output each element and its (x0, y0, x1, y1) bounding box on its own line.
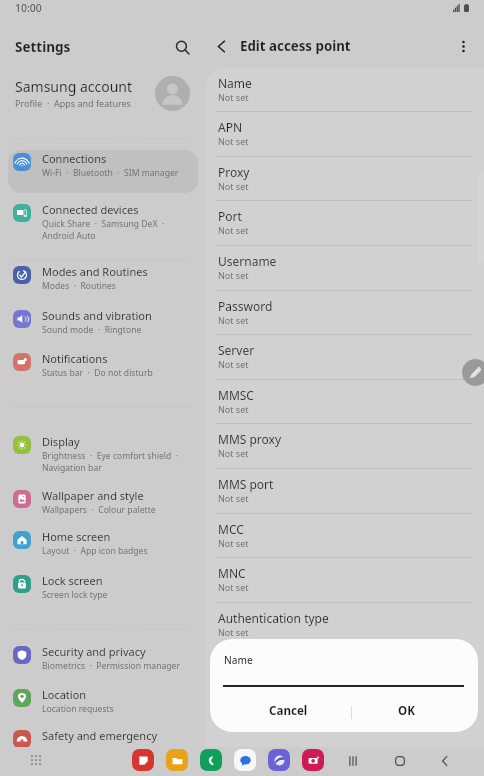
staticText: Biometrics · Permission manager (42, 660, 180, 672)
staticText: Name (224, 653, 253, 667)
staticText: Not set (218, 180, 249, 192)
staticText: Modes · Routines (42, 280, 116, 292)
button[interactable]: Samsung account (0, 69, 205, 117)
button[interactable]: Notifications (8, 350, 198, 393)
staticText: Proxy (218, 164, 250, 180)
button[interactable]: Cancel (218, 691, 359, 732)
button[interactable]: Recents (342, 750, 364, 772)
button[interactable]: Server (205, 334, 484, 379)
button[interactable]: MCC (205, 513, 484, 558)
button[interactable]: OK (343, 691, 469, 732)
button[interactable]: Name (205, 68, 484, 112)
button[interactable]: Location (8, 686, 198, 729)
staticText: Not set (218, 581, 249, 593)
button[interactable]: Safety and emergency (8, 727, 198, 770)
staticText: Notifications (42, 351, 108, 366)
button[interactable]: MNC (205, 557, 484, 602)
staticText: Server (218, 342, 255, 358)
staticText: 10:00 (15, 1, 42, 15)
staticText: Settings (15, 38, 71, 56)
staticText: MCC (218, 521, 244, 537)
button[interactable]: Username (205, 245, 484, 290)
staticText: Location (42, 687, 87, 702)
button[interactable]: Password (205, 290, 484, 335)
button[interactable]: Display (8, 433, 198, 484)
staticText: Not set (218, 537, 249, 549)
staticText: Not set (218, 403, 249, 415)
button[interactable]: MMSC (205, 379, 484, 424)
staticText: Safety and emergency (42, 728, 158, 743)
staticText: Modes and Routines (42, 264, 148, 279)
button[interactable]: MMS port (205, 468, 484, 513)
button[interactable]: Security and privacy (8, 643, 198, 686)
button[interactable]: MMS proxy (205, 423, 484, 468)
staticText: Screen lock type (42, 589, 108, 601)
staticText: Status bar · Do not disturb (42, 367, 153, 379)
button[interactable]: Back (434, 750, 456, 772)
staticText: Name (218, 75, 252, 91)
staticText: OK (398, 703, 415, 719)
staticText: MMS port (218, 476, 274, 492)
button[interactable]: APN (205, 111, 484, 156)
staticText: Not set (218, 135, 249, 147)
staticText: Username (218, 253, 277, 269)
staticText: Home screen (42, 529, 111, 544)
button[interactable]: Home screen (8, 528, 198, 571)
staticText: Cancel (269, 703, 308, 719)
staticText: Not set (218, 91, 249, 103)
button[interactable]: phone (200, 749, 222, 771)
button[interactable]: Lock screen (8, 572, 198, 615)
staticText: Not set (218, 269, 249, 281)
staticText: Wi-Fi · Bluetooth · SIM manager (42, 167, 179, 179)
staticText: Connections (42, 151, 107, 166)
staticText: Not set (218, 626, 249, 638)
staticText: Sounds and vibration (42, 308, 152, 323)
button[interactable]: camera (302, 749, 324, 771)
staticText: Connected devices (42, 202, 139, 217)
button[interactable]: messages (234, 749, 256, 771)
staticText: Location requests (42, 703, 114, 715)
staticText: Lock screen (42, 573, 103, 588)
staticText: Not set (218, 224, 249, 236)
staticText: Wallpapers · Colour palette (42, 504, 156, 516)
button[interactable]: More options (450, 33, 476, 59)
staticText: Layout · App icon badges (42, 545, 148, 557)
button[interactable]: Edit (462, 359, 484, 386)
button[interactable]: Modes and Routines (8, 263, 198, 306)
staticText: Quick Share · Samsung DeX · Android Auto (42, 218, 165, 242)
staticText: Sound mode · Ringtone (42, 324, 142, 336)
staticText: MNC (218, 565, 246, 581)
staticText: Brightness · Eye comfort shield · Naviga… (42, 450, 179, 474)
button[interactable]: Home (389, 750, 411, 772)
staticText: Not set (218, 358, 249, 370)
button[interactable]: Search (168, 33, 196, 61)
button[interactable]: Sounds and vibration (8, 307, 198, 350)
staticText: MMSC (218, 387, 254, 403)
button[interactable]: Wallpaper and style (8, 487, 198, 530)
staticText: Profile · Apps and features (15, 97, 131, 109)
button[interactable]: Connections (8, 150, 198, 193)
staticText: Authentication type (218, 610, 329, 626)
button[interactable]: Proxy (205, 156, 484, 201)
staticText: Wallpaper and style (42, 488, 144, 503)
staticText: APN (218, 119, 243, 135)
staticText: Port (218, 208, 242, 224)
staticText: Samsung account (15, 77, 133, 96)
staticText: Not set (218, 492, 249, 504)
button[interactable]: Port (205, 200, 484, 245)
staticText: Edit access point (240, 37, 351, 55)
staticText: Security and privacy (42, 644, 146, 659)
staticText: Password (218, 298, 273, 314)
button[interactable]: Connected devices (8, 201, 198, 252)
staticText: MMS proxy (218, 431, 282, 447)
button[interactable]: notes (132, 749, 154, 771)
button[interactable]: Back (207, 32, 235, 60)
staticText: Not set (218, 314, 249, 326)
staticText: Display (42, 434, 80, 449)
button[interactable]: Authentication type (205, 602, 484, 647)
staticText: Not set (218, 447, 249, 459)
button[interactable]: files (166, 749, 188, 771)
button[interactable]: internet (268, 749, 290, 771)
button[interactable]: Apps (25, 749, 46, 770)
